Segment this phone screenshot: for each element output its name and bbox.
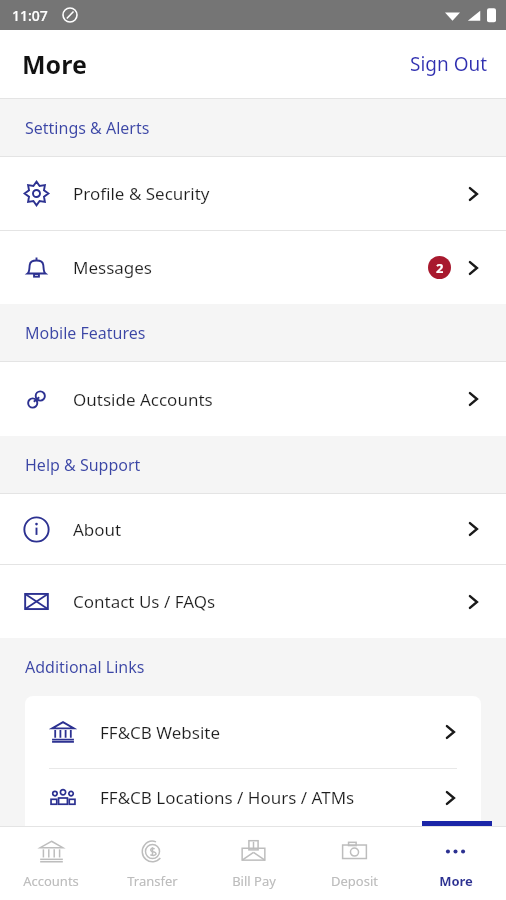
button[interactable]: Messages <box>0 231 506 304</box>
staticText: More <box>22 47 87 81</box>
staticText: Bill Pay <box>232 872 276 890</box>
staticText: Contact Us / FAQs <box>73 590 464 613</box>
staticText: Profile & Security <box>73 182 464 205</box>
button[interactable]: Deposit <box>304 827 405 900</box>
staticText: Accounts <box>23 872 79 890</box>
staticText: Deposit <box>331 872 378 890</box>
button[interactable]: About <box>0 494 506 564</box>
button[interactable]: Sign Out <box>392 41 506 87</box>
staticText: Additional Links <box>25 656 145 678</box>
button[interactable]: Accounts <box>0 827 102 900</box>
button[interactable]: Outside Accounts <box>0 362 506 436</box>
staticText: FF&CB Locations / Hours / ATMs <box>100 786 441 809</box>
staticText: 11:07 <box>12 6 48 25</box>
button[interactable]: FF&CB Locations / Hours / ATMs <box>25 769 481 826</box>
button[interactable]: Profile & Security <box>0 157 506 230</box>
button[interactable]: FF&CB Website <box>25 696 481 768</box>
button[interactable]: Bill Pay <box>203 827 304 900</box>
staticText: 2 <box>436 259 444 277</box>
button[interactable]: Transfer <box>102 827 203 900</box>
button[interactable]: Contact Us / FAQs <box>0 565 506 638</box>
staticText: Help & Support <box>25 454 141 476</box>
staticText: Settings & Alerts <box>25 117 150 139</box>
button[interactable]: More <box>405 827 506 900</box>
staticText: Outside Accounts <box>73 388 464 411</box>
staticText: Sign Out <box>410 51 488 77</box>
staticText: More <box>439 872 473 890</box>
staticText: Mobile Features <box>25 322 146 344</box>
staticText: FF&CB Website <box>100 721 441 744</box>
staticText: Transfer <box>127 872 178 890</box>
staticText: Messages <box>73 256 428 279</box>
staticText: About <box>73 518 464 541</box>
